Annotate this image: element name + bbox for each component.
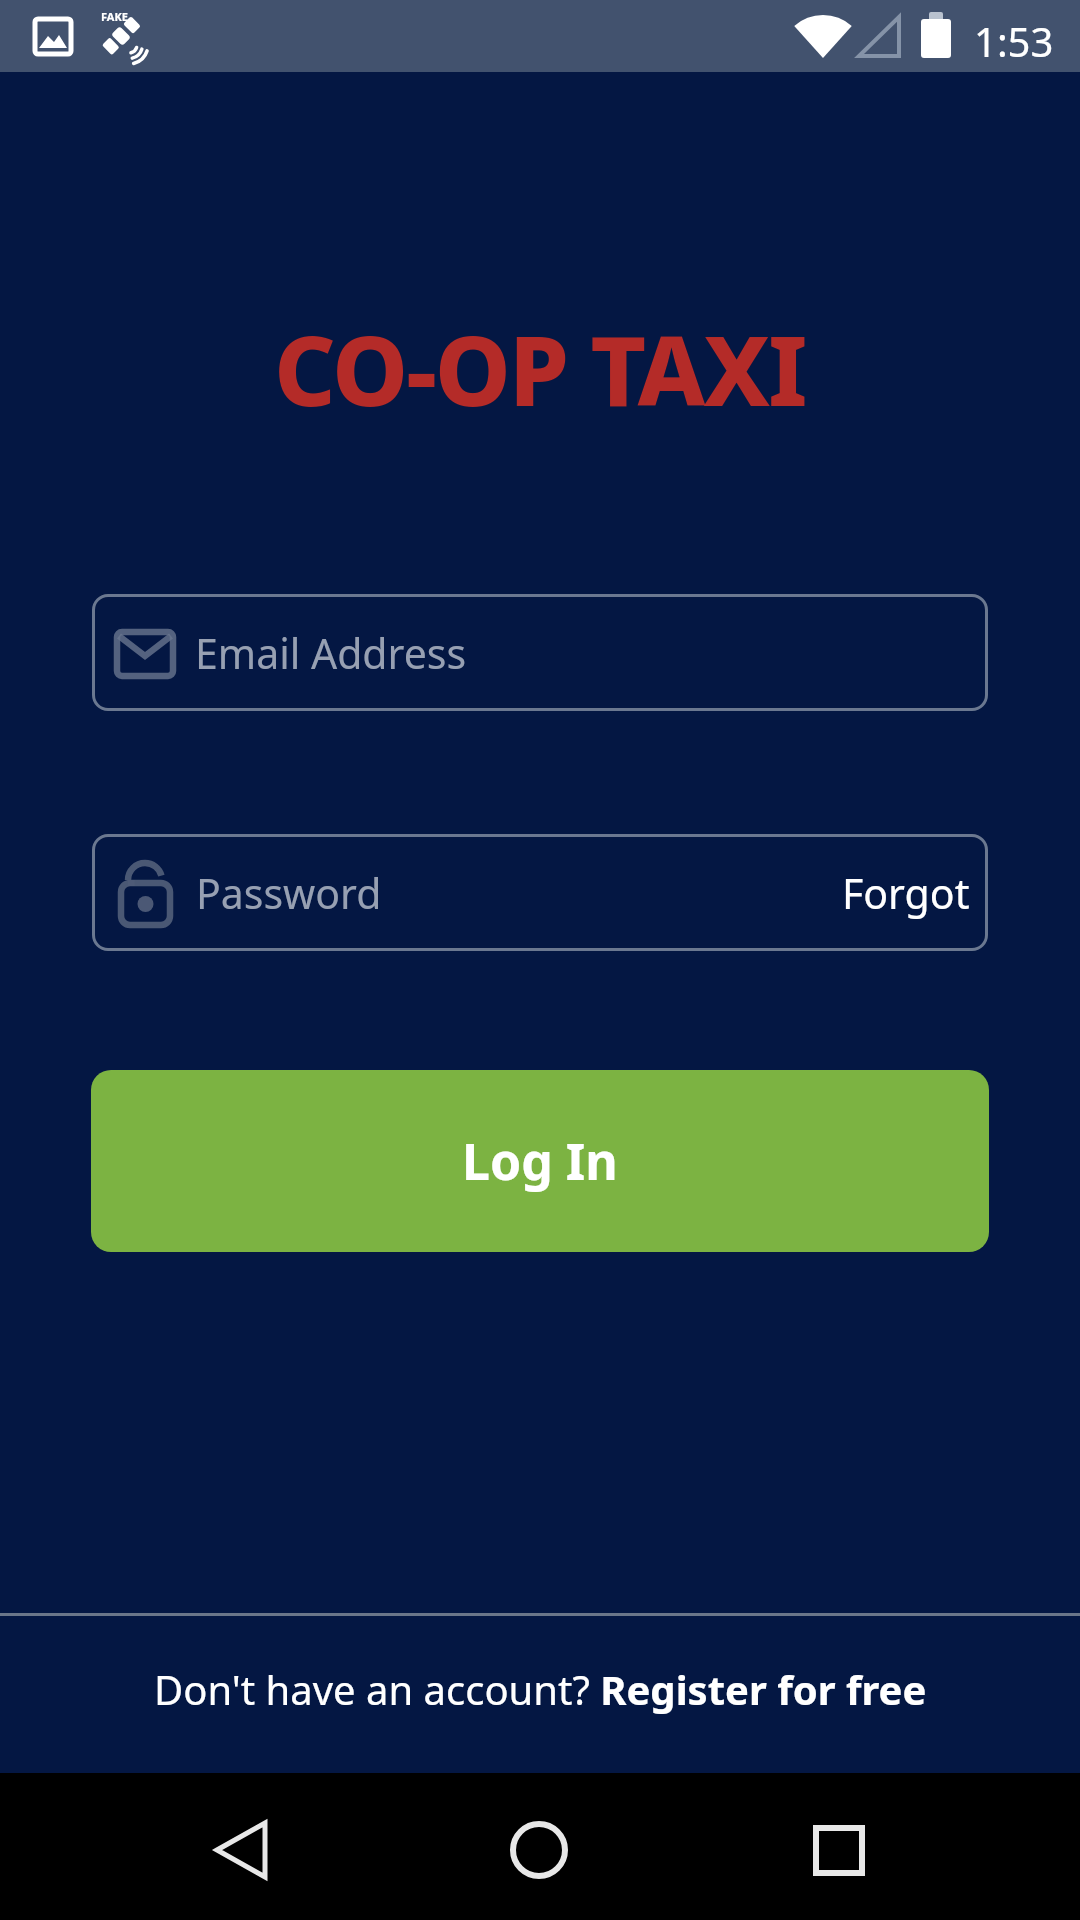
button[interactable]: Email Address [92,594,988,711]
staticText: CO-OP TAXI [274,303,806,434]
staticText: FAKE [101,9,128,24]
button[interactable] [207,1821,275,1879]
button[interactable]: Don't have an account? Register for free [0,1613,1080,1765]
button[interactable]: Forgot [842,865,970,921]
staticText: Password [196,865,382,921]
staticText: Log In [462,1127,618,1195]
button[interactable] [511,1822,567,1878]
staticText: Forgot [842,865,970,921]
button[interactable]: Log In [91,1070,989,1252]
staticText: Don't have an account? Register for free [154,1662,927,1716]
staticText: 1:53 [974,14,1054,68]
button[interactable]: Password [92,834,988,951]
button[interactable] [813,1825,865,1876]
staticText: Email Address [195,625,467,681]
